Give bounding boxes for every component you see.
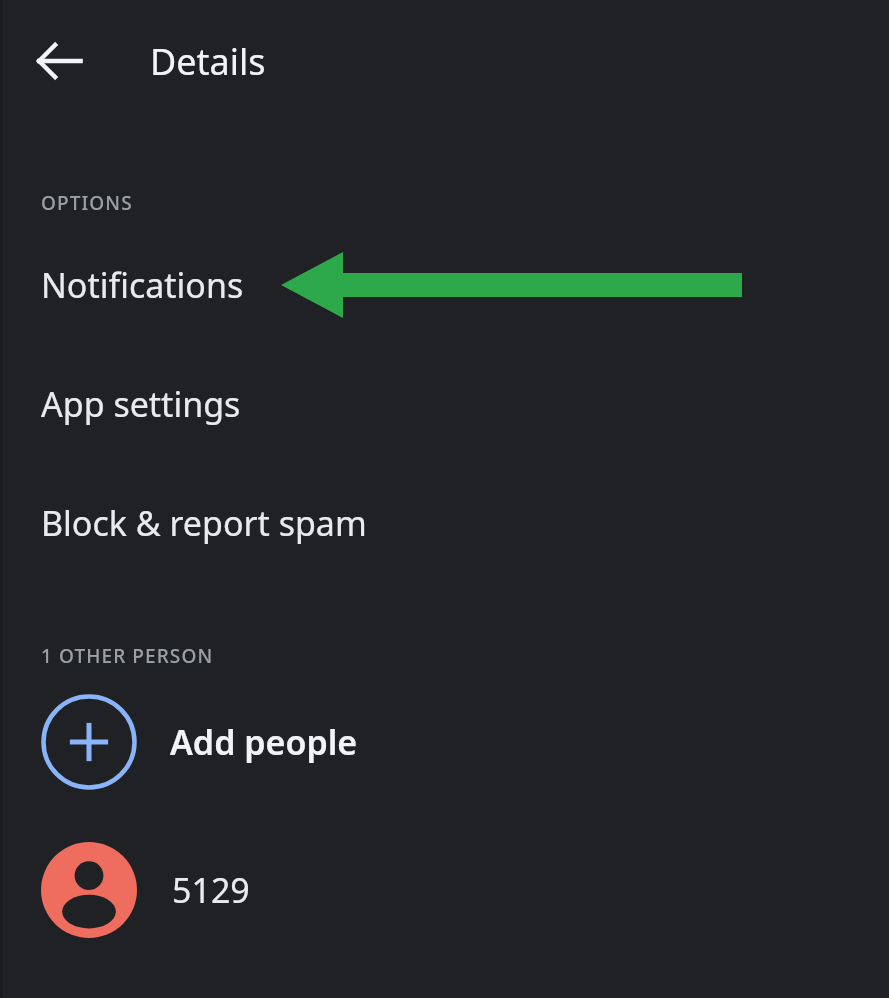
button[interactable]: Back	[29, 30, 91, 92]
staticText: Add people	[170, 719, 358, 765]
staticText: OPTIONS	[41, 190, 133, 216]
staticText: 1 OTHER PERSON	[41, 643, 214, 669]
button[interactable]: App settings	[0, 362, 889, 446]
button[interactable]: 5129	[0, 837, 889, 943]
staticText: Notifications	[41, 262, 244, 308]
button[interactable]: Add people	[0, 689, 889, 795]
staticText: Details	[150, 37, 266, 86]
staticText: Block & report spam	[41, 500, 367, 546]
staticText: 5129	[172, 867, 250, 913]
staticText: App settings	[41, 381, 241, 427]
button[interactable]: Notifications	[0, 243, 889, 327]
button[interactable]: Block & report spam	[0, 481, 889, 565]
